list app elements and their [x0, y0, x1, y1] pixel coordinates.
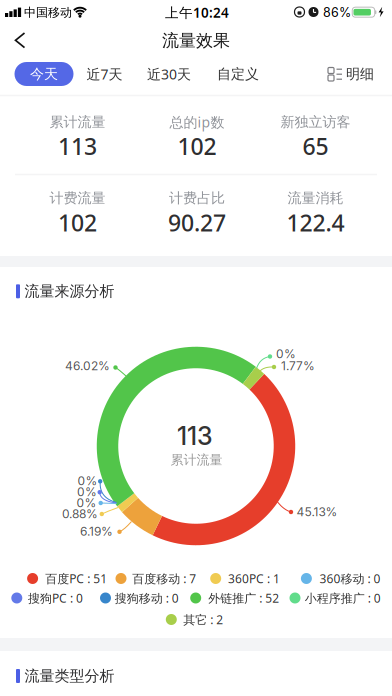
- staticText: 百度PC : 51: [45, 570, 107, 586]
- staticText: 累计流量: [170, 452, 222, 468]
- staticText: 总的ip数: [169, 113, 224, 131]
- button[interactable]: 明细: [322, 60, 382, 88]
- button[interactable]: 近7天: [86, 65, 122, 83]
- staticText: 累计流量: [49, 113, 105, 131]
- staticText: 搜狗PC : 0: [28, 590, 83, 606]
- staticText: 90.27: [168, 207, 226, 238]
- staticText: 113: [58, 131, 97, 161]
- staticText: 外链推广 : 52: [208, 590, 279, 606]
- staticText: 102: [58, 207, 97, 238]
- staticText: 0%: [77, 474, 97, 488]
- staticText: 今天: [30, 65, 58, 83]
- staticText: 百度移动 : 7: [132, 570, 196, 586]
- staticText: 113: [177, 421, 213, 451]
- staticText: 360移动 : 0: [319, 570, 380, 586]
- staticText: 流量效果: [162, 30, 230, 51]
- staticText: 0%: [276, 347, 296, 361]
- staticText: 自定义: [217, 65, 259, 83]
- staticText: 中国移动: [24, 5, 72, 20]
- staticText: 近7天: [86, 65, 122, 83]
- staticText: 上午10:24: [165, 3, 229, 21]
- staticText: 0%: [77, 485, 97, 499]
- staticText: 流量来源分析: [24, 282, 114, 300]
- staticText: 其它 : 2: [183, 611, 223, 627]
- staticText: 122.4: [286, 207, 344, 238]
- staticText: 102: [177, 131, 216, 161]
- button[interactable]: [0, 0, 44, 44]
- staticText: 新独立访客: [280, 113, 350, 131]
- staticText: 86%: [323, 5, 351, 20]
- staticText: 0.88%: [62, 507, 98, 521]
- staticText: 计费占比: [169, 189, 225, 207]
- staticText: 360PC : 1: [228, 570, 280, 586]
- staticText: 1.77%: [281, 359, 315, 373]
- button[interactable]: 自定义: [217, 65, 259, 83]
- staticText: 近30天: [147, 65, 191, 83]
- button[interactable]: 近30天: [147, 65, 191, 83]
- staticText: 小程序推广 : 0: [305, 590, 381, 606]
- staticText: 0%: [76, 496, 96, 510]
- staticText: 搜狗移动 : 0: [115, 590, 179, 606]
- staticText: 流量类型分析: [24, 667, 114, 685]
- staticText: 计费流量: [49, 189, 105, 207]
- staticText: 6.19%: [80, 524, 113, 539]
- staticText: 45.13%: [296, 505, 337, 519]
- staticText: 46.02%: [65, 359, 110, 373]
- staticText: 65: [302, 131, 328, 161]
- button[interactable]: 今天: [14, 62, 73, 86]
- staticText: 流量消耗: [287, 189, 343, 207]
- staticText: 明细: [346, 65, 374, 83]
